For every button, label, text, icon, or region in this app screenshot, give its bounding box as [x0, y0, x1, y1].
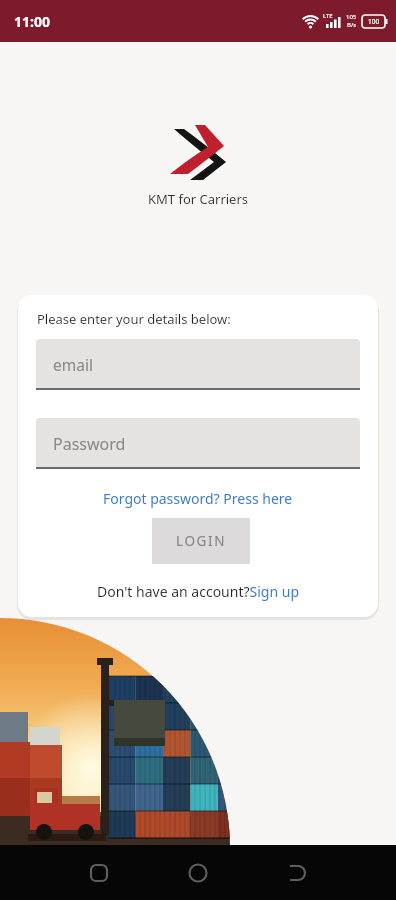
staticText: LOGIN: [176, 532, 227, 550]
button[interactable]: [174, 849, 222, 897]
staticText: 105: [346, 13, 357, 21]
staticText: Don't have an account?Sign up: [97, 582, 300, 601]
button[interactable]: Don't have an account?Sign up: [18, 580, 378, 602]
staticText: Forgot password? Press here: [103, 489, 293, 508]
button[interactable]: Forgot password? Press here: [18, 487, 378, 509]
button[interactable]: [75, 849, 123, 897]
staticText: 11:00: [14, 12, 50, 31]
button[interactable]: Password: [36, 418, 360, 469]
staticText: KMT for Carriers: [0, 190, 396, 208]
button[interactable]: LOGIN: [152, 518, 250, 564]
staticText: Please enter your details below:: [37, 310, 231, 328]
staticText: Password: [53, 433, 126, 455]
staticText: B/s: [347, 21, 357, 29]
staticText: LTE: [323, 12, 333, 20]
button[interactable]: [273, 849, 321, 897]
staticText: email: [53, 354, 93, 375]
staticText: 100: [368, 17, 380, 26]
button[interactable]: email: [36, 339, 360, 390]
